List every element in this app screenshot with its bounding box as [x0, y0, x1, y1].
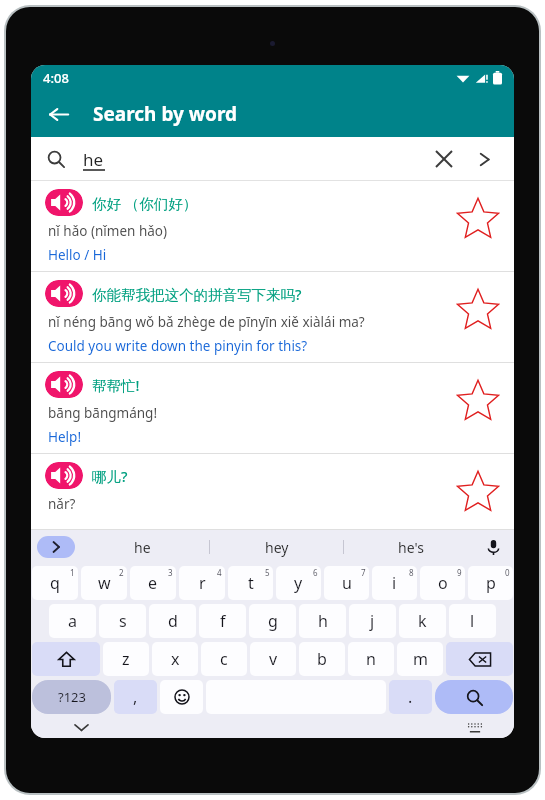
- staticText: 4:08: [43, 69, 69, 87]
- button[interactable]: b: [299, 642, 345, 676]
- button[interactable]: ,: [114, 680, 157, 714]
- staticText: Hello / Hi: [48, 246, 107, 264]
- staticText: hey: [265, 538, 289, 557]
- staticText: y: [294, 572, 303, 594]
- button[interactable]: a: [49, 604, 96, 638]
- button[interactable]: Play audio: [31, 181, 514, 272]
- staticText: 6: [313, 567, 318, 578]
- button[interactable]: s: [99, 604, 146, 638]
- staticText: 你好 （你们好）: [92, 193, 198, 213]
- button[interactable]: t: [228, 566, 273, 600]
- button[interactable]: Clear: [424, 139, 464, 179]
- staticText: nǎr?: [48, 495, 76, 513]
- button[interactable]: u: [324, 566, 369, 600]
- staticText: j: [370, 610, 375, 632]
- button[interactable]: x: [152, 642, 198, 676]
- button[interactable]: z: [103, 642, 149, 676]
- staticText: .: [408, 686, 413, 708]
- staticText: 哪儿?: [92, 466, 128, 486]
- button[interactable]: Search: [435, 680, 513, 714]
- staticText: he's: [398, 538, 424, 557]
- button[interactable]: f: [199, 604, 246, 638]
- staticText: 8: [409, 567, 414, 578]
- staticText: o: [438, 572, 448, 594]
- button[interactable]: Favorite: [452, 193, 504, 245]
- staticText: 2: [119, 567, 124, 578]
- staticText: Help!: [48, 428, 82, 446]
- button[interactable]: Favorite: [452, 375, 504, 427]
- button[interactable]: y: [276, 566, 321, 600]
- button[interactable]: p: [468, 566, 513, 600]
- button[interactable]: m: [397, 642, 443, 676]
- staticText: i: [392, 572, 397, 594]
- button[interactable]: q: [32, 566, 78, 600]
- button[interactable]: More suggestions: [37, 536, 75, 558]
- staticText: nǐ néng bāng wǒ bǎ zhège de pīnyīn xiě x…: [48, 313, 365, 331]
- staticText: 1: [70, 567, 75, 578]
- button[interactable]: w: [81, 566, 127, 600]
- button[interactable]: Back: [37, 93, 79, 135]
- staticText: r: [199, 572, 206, 594]
- button[interactable]: he's: [344, 530, 478, 564]
- staticText: Could you write down the pinyin for this…: [48, 337, 308, 355]
- staticText: w: [98, 572, 111, 594]
- staticText: 你能帮我把这个的拼音写下来吗?: [92, 284, 302, 304]
- button[interactable]: Shift: [32, 642, 100, 676]
- staticText: 4: [217, 567, 222, 578]
- button[interactable]: v: [250, 642, 296, 676]
- button[interactable]: r: [179, 566, 225, 600]
- staticText: q: [50, 572, 60, 594]
- staticText: h: [318, 610, 328, 632]
- button[interactable]: Backspace: [446, 642, 513, 676]
- button[interactable]: d: [149, 604, 196, 638]
- button[interactable]: Search: [41, 144, 71, 174]
- staticText: he: [83, 148, 104, 171]
- staticText: g: [268, 610, 278, 632]
- button[interactable]: l: [449, 604, 496, 638]
- button[interactable]: Play audio: [45, 462, 83, 489]
- button[interactable]: k: [399, 604, 446, 638]
- button[interactable]: g: [249, 604, 296, 638]
- button[interactable]: Play audio: [31, 363, 514, 454]
- staticText: 5: [265, 567, 270, 578]
- button[interactable]: Play audio: [45, 371, 83, 398]
- staticText: 0: [505, 567, 510, 578]
- staticText: ,: [133, 686, 138, 708]
- button[interactable]: .: [389, 680, 432, 714]
- button[interactable]: Submit: [464, 139, 504, 179]
- staticText: 3: [168, 567, 173, 578]
- staticText: a: [68, 610, 77, 632]
- button[interactable]: n: [348, 642, 394, 676]
- button[interactable]: he: [75, 530, 210, 564]
- button[interactable]: Hide keyboard: [69, 716, 93, 738]
- staticText: ?123: [58, 688, 86, 706]
- staticText: l: [470, 610, 475, 632]
- staticText: m: [413, 648, 428, 670]
- button[interactable]: h: [299, 604, 346, 638]
- button[interactable]: o: [420, 566, 465, 600]
- button[interactable]: ?123: [32, 680, 111, 714]
- button[interactable]: hey: [210, 530, 344, 564]
- button[interactable]: j: [349, 604, 396, 638]
- button[interactable]: Play audio: [45, 189, 83, 216]
- button[interactable]: e: [130, 566, 176, 600]
- button[interactable]: Play audio: [45, 280, 83, 307]
- button[interactable]: Favorite: [452, 466, 504, 518]
- staticText: b: [317, 648, 327, 670]
- staticText: t: [248, 572, 254, 594]
- button[interactable]: Play audio: [31, 272, 514, 363]
- staticText: n: [366, 648, 376, 670]
- button[interactable]: Change keyboard: [464, 716, 486, 738]
- button[interactable]: Emoji: [160, 680, 203, 714]
- button[interactable]: c: [201, 642, 247, 676]
- staticText: p: [486, 572, 496, 594]
- button[interactable]: Voice input: [478, 532, 508, 562]
- staticText: v: [269, 648, 278, 670]
- staticText: Search by word: [93, 101, 238, 127]
- button[interactable]: i: [372, 566, 417, 600]
- button[interactable]: Play audio: [31, 454, 514, 530]
- button[interactable]: Favorite: [452, 284, 504, 336]
- staticText: z: [122, 648, 130, 670]
